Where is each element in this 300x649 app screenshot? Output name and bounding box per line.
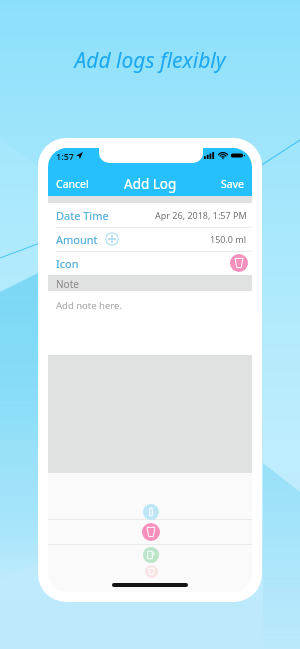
button[interactable]: Add note here. — [48, 291, 252, 355]
button[interactable]: Select drink icon — [145, 565, 158, 578]
button[interactable]: Amount — [48, 227, 252, 251]
staticText: Amount — [56, 232, 98, 247]
button[interactable]: Add amount — [105, 232, 119, 246]
staticText: 150.0 ml — [210, 233, 247, 245]
staticText: Cancel — [56, 177, 89, 191]
staticText: Add Log — [124, 175, 177, 193]
staticText: Icon — [56, 256, 79, 271]
staticText: Save — [221, 177, 244, 191]
button[interactable]: Date Time — [48, 203, 252, 227]
staticText: Date Time — [56, 208, 109, 223]
staticText: Apr 26, 2018, 1:57 PM — [155, 209, 247, 221]
staticText: Add logs flexibly — [0, 46, 300, 75]
button[interactable]: Change icon — [230, 254, 248, 272]
staticText: 1:57 — [56, 150, 74, 162]
button[interactable]: Select drink icon — [143, 504, 159, 520]
staticText: Add note here. — [56, 299, 122, 312]
button[interactable]: Select drink icon — [142, 523, 160, 541]
staticText: Note — [56, 277, 79, 291]
button[interactable]: Save — [213, 171, 252, 196]
button[interactable]: Select drink icon — [143, 547, 159, 563]
button[interactable]: Cancel — [48, 171, 97, 196]
button[interactable]: Icon — [48, 251, 252, 275]
